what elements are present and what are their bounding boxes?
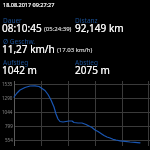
staticText: (05:24:39) xyxy=(44,25,72,33)
staticText: Distanz xyxy=(75,16,98,25)
staticText: 11,27 km/h xyxy=(2,42,55,56)
button[interactable]: 18.08.2017 09:27:27 xyxy=(3,1,55,8)
staticText: Abstieg xyxy=(75,58,98,67)
staticText: Ø Geschw. xyxy=(3,37,36,46)
staticText: 08:10:45 xyxy=(2,21,42,35)
staticText: 554 xyxy=(5,137,13,143)
staticText: (17.03 km/h) xyxy=(57,46,93,54)
staticText: 1044 xyxy=(2,109,13,115)
staticText: 1042 m xyxy=(2,63,37,77)
staticText: 1535 xyxy=(2,81,13,87)
staticText: 799 xyxy=(5,123,13,129)
staticText: 2075 m xyxy=(75,63,110,77)
staticText: Aufstieg xyxy=(3,58,29,67)
staticText: 1290 xyxy=(2,95,13,101)
staticText: Dauer xyxy=(3,16,22,25)
staticText: 92,149 km xyxy=(75,21,124,35)
